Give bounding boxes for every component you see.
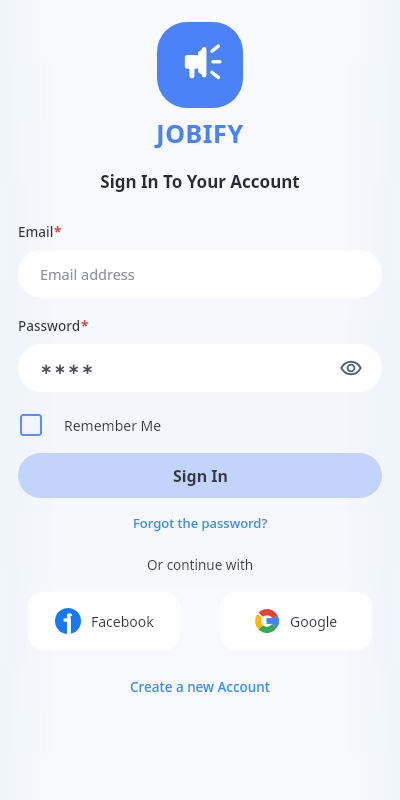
staticText: Create a new Account — [130, 678, 270, 696]
button[interactable]: Forgot the password? — [125, 512, 276, 534]
staticText: Email address — [40, 264, 135, 284]
button[interactable]: ∗∗∗∗ — [18, 344, 382, 392]
staticText: Google — [290, 612, 338, 631]
button[interactable]: Google — [220, 592, 372, 650]
button[interactable]: Email address — [18, 250, 382, 298]
button[interactable]: Jobify logo — [157, 22, 243, 108]
button[interactable]: Sign In — [18, 453, 382, 498]
staticText: Password — [18, 317, 81, 335]
button[interactable]: Facebook — [28, 592, 180, 650]
staticText: Forgot the password? — [133, 514, 268, 532]
staticText: ∗∗∗∗ — [40, 360, 96, 377]
staticText: JOBIFY — [156, 116, 244, 150]
staticText: * — [54, 223, 62, 241]
staticText: Sign In To Your Account — [100, 170, 300, 193]
staticText: Facebook — [91, 612, 154, 631]
staticText: Or continue with — [147, 556, 254, 574]
staticText: Sign In — [173, 465, 228, 487]
button[interactable]: Show password — [334, 351, 368, 385]
staticText: Email — [18, 223, 54, 241]
button[interactable]: Remember Me — [18, 408, 164, 442]
staticText: * — [81, 317, 89, 335]
staticText: Remember Me — [64, 416, 162, 435]
button[interactable]: Create a new Account — [122, 676, 278, 698]
